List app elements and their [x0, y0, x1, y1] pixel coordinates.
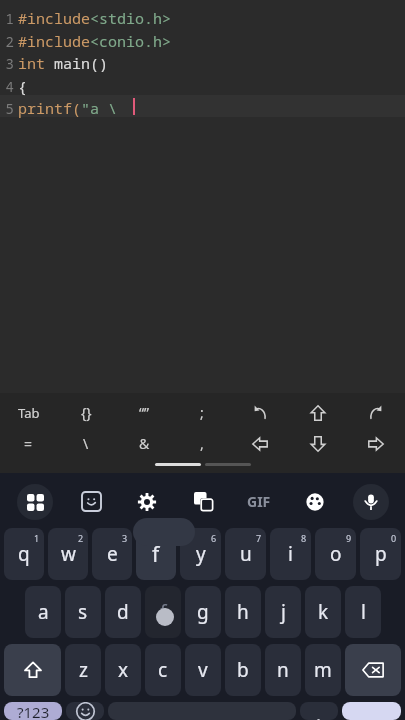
staticText: g	[197, 599, 209, 625]
button[interactable]: redo	[347, 397, 405, 428]
staticText: v	[198, 657, 208, 683]
button[interactable]: c	[145, 644, 181, 696]
button[interactable]: f	[136, 528, 176, 580]
staticText: Tab	[18, 404, 40, 422]
staticText: ;	[200, 403, 204, 422]
button[interactable]: k	[305, 586, 341, 638]
button[interactable]: m	[305, 644, 341, 696]
button[interactable]: x	[105, 644, 141, 696]
button[interactable]: f	[145, 586, 181, 638]
button[interactable]: Settings	[119, 478, 175, 525]
button[interactable]: n	[265, 644, 301, 696]
button[interactable]: Emoji	[66, 702, 104, 720]
button[interactable]: Backspace	[345, 644, 401, 696]
staticText: o	[330, 541, 342, 567]
staticText: e	[107, 541, 118, 567]
button[interactable]: Enter	[342, 702, 401, 720]
staticText: #include<conio.h>	[18, 31, 172, 51]
staticText: “”	[139, 403, 150, 422]
button[interactable]: up	[289, 397, 347, 428]
button[interactable]: b	[225, 644, 261, 696]
button[interactable]: j	[265, 586, 301, 638]
staticText: 8	[301, 532, 307, 544]
button[interactable]: y	[180, 528, 221, 580]
button[interactable]: v	[185, 644, 221, 696]
staticText: 2	[78, 532, 84, 544]
staticText: 7	[256, 532, 262, 544]
staticText: 5	[0, 99, 14, 118]
button[interactable]: GIF	[231, 478, 287, 525]
button[interactable]: Translate	[175, 478, 231, 525]
staticText: 6	[211, 532, 217, 544]
button[interactable]: ,	[173, 428, 231, 459]
staticText: .	[316, 702, 322, 720]
staticText: ,	[200, 434, 204, 453]
staticText: z	[79, 657, 88, 683]
button[interactable]: ;	[173, 397, 231, 428]
button[interactable]: Shift	[4, 644, 61, 696]
staticText: 1	[34, 532, 40, 544]
staticText: a	[38, 599, 49, 625]
staticText: h	[237, 599, 249, 625]
staticText: #include<stdio.h>	[18, 8, 172, 28]
button[interactable]: d	[105, 586, 141, 638]
button[interactable]: Apps	[6, 478, 63, 525]
button[interactable]: q	[4, 528, 44, 580]
staticText: j	[281, 599, 286, 625]
button[interactable]: Themes	[287, 478, 343, 525]
staticText: f	[152, 540, 160, 569]
button[interactable]: undo	[231, 397, 289, 428]
button[interactable]: a	[25, 586, 61, 638]
button[interactable]: s	[65, 586, 101, 638]
button[interactable]: right	[347, 428, 405, 459]
staticText: 0	[391, 532, 397, 544]
button[interactable]: {}	[57, 397, 115, 428]
button[interactable]: u	[225, 528, 266, 580]
button[interactable]: h	[225, 586, 261, 638]
staticText: \	[83, 434, 89, 453]
staticText: d	[117, 599, 129, 625]
button[interactable]: Stickers	[63, 478, 119, 525]
button[interactable]: l	[345, 586, 381, 638]
staticText: s	[78, 599, 88, 625]
button[interactable]: .	[300, 702, 338, 720]
staticText: w	[61, 541, 76, 567]
staticText: n	[277, 657, 289, 683]
staticText: 3	[0, 54, 14, 73]
button[interactable]: “”	[115, 397, 173, 428]
staticText: u	[240, 541, 252, 567]
button[interactable]: Tab	[0, 397, 57, 428]
staticText: f	[160, 599, 167, 625]
button[interactable]: down	[289, 428, 347, 459]
staticText: int main()	[18, 53, 109, 73]
staticText: i	[288, 541, 293, 567]
button[interactable]: z	[65, 644, 101, 696]
button[interactable]: =	[0, 428, 57, 459]
staticText: p	[375, 541, 387, 567]
button[interactable]: ?123	[4, 702, 62, 720]
staticText: q	[18, 541, 30, 567]
staticText: l	[361, 599, 366, 625]
button[interactable]: i	[270, 528, 311, 580]
button[interactable]: w	[48, 528, 88, 580]
button[interactable]: &	[115, 428, 173, 459]
staticText: {}	[81, 403, 92, 422]
button[interactable]: o	[315, 528, 356, 580]
staticText: y	[196, 541, 206, 567]
staticText: k	[318, 599, 329, 625]
button[interactable]: left	[231, 428, 289, 459]
staticText: =	[24, 434, 33, 453]
staticText: 1	[0, 9, 14, 28]
button[interactable]: p	[360, 528, 401, 580]
staticText: printf("a \	[18, 98, 118, 118]
staticText: 4	[0, 77, 14, 96]
button[interactable]: g	[185, 586, 221, 638]
staticText: b	[237, 657, 249, 683]
button[interactable]: \	[57, 428, 115, 459]
staticText: GIF	[247, 492, 271, 511]
button[interactable]: e	[92, 528, 132, 580]
staticText: 3	[122, 532, 128, 544]
staticText: x	[118, 657, 129, 683]
button[interactable]: Voice input	[343, 478, 399, 525]
